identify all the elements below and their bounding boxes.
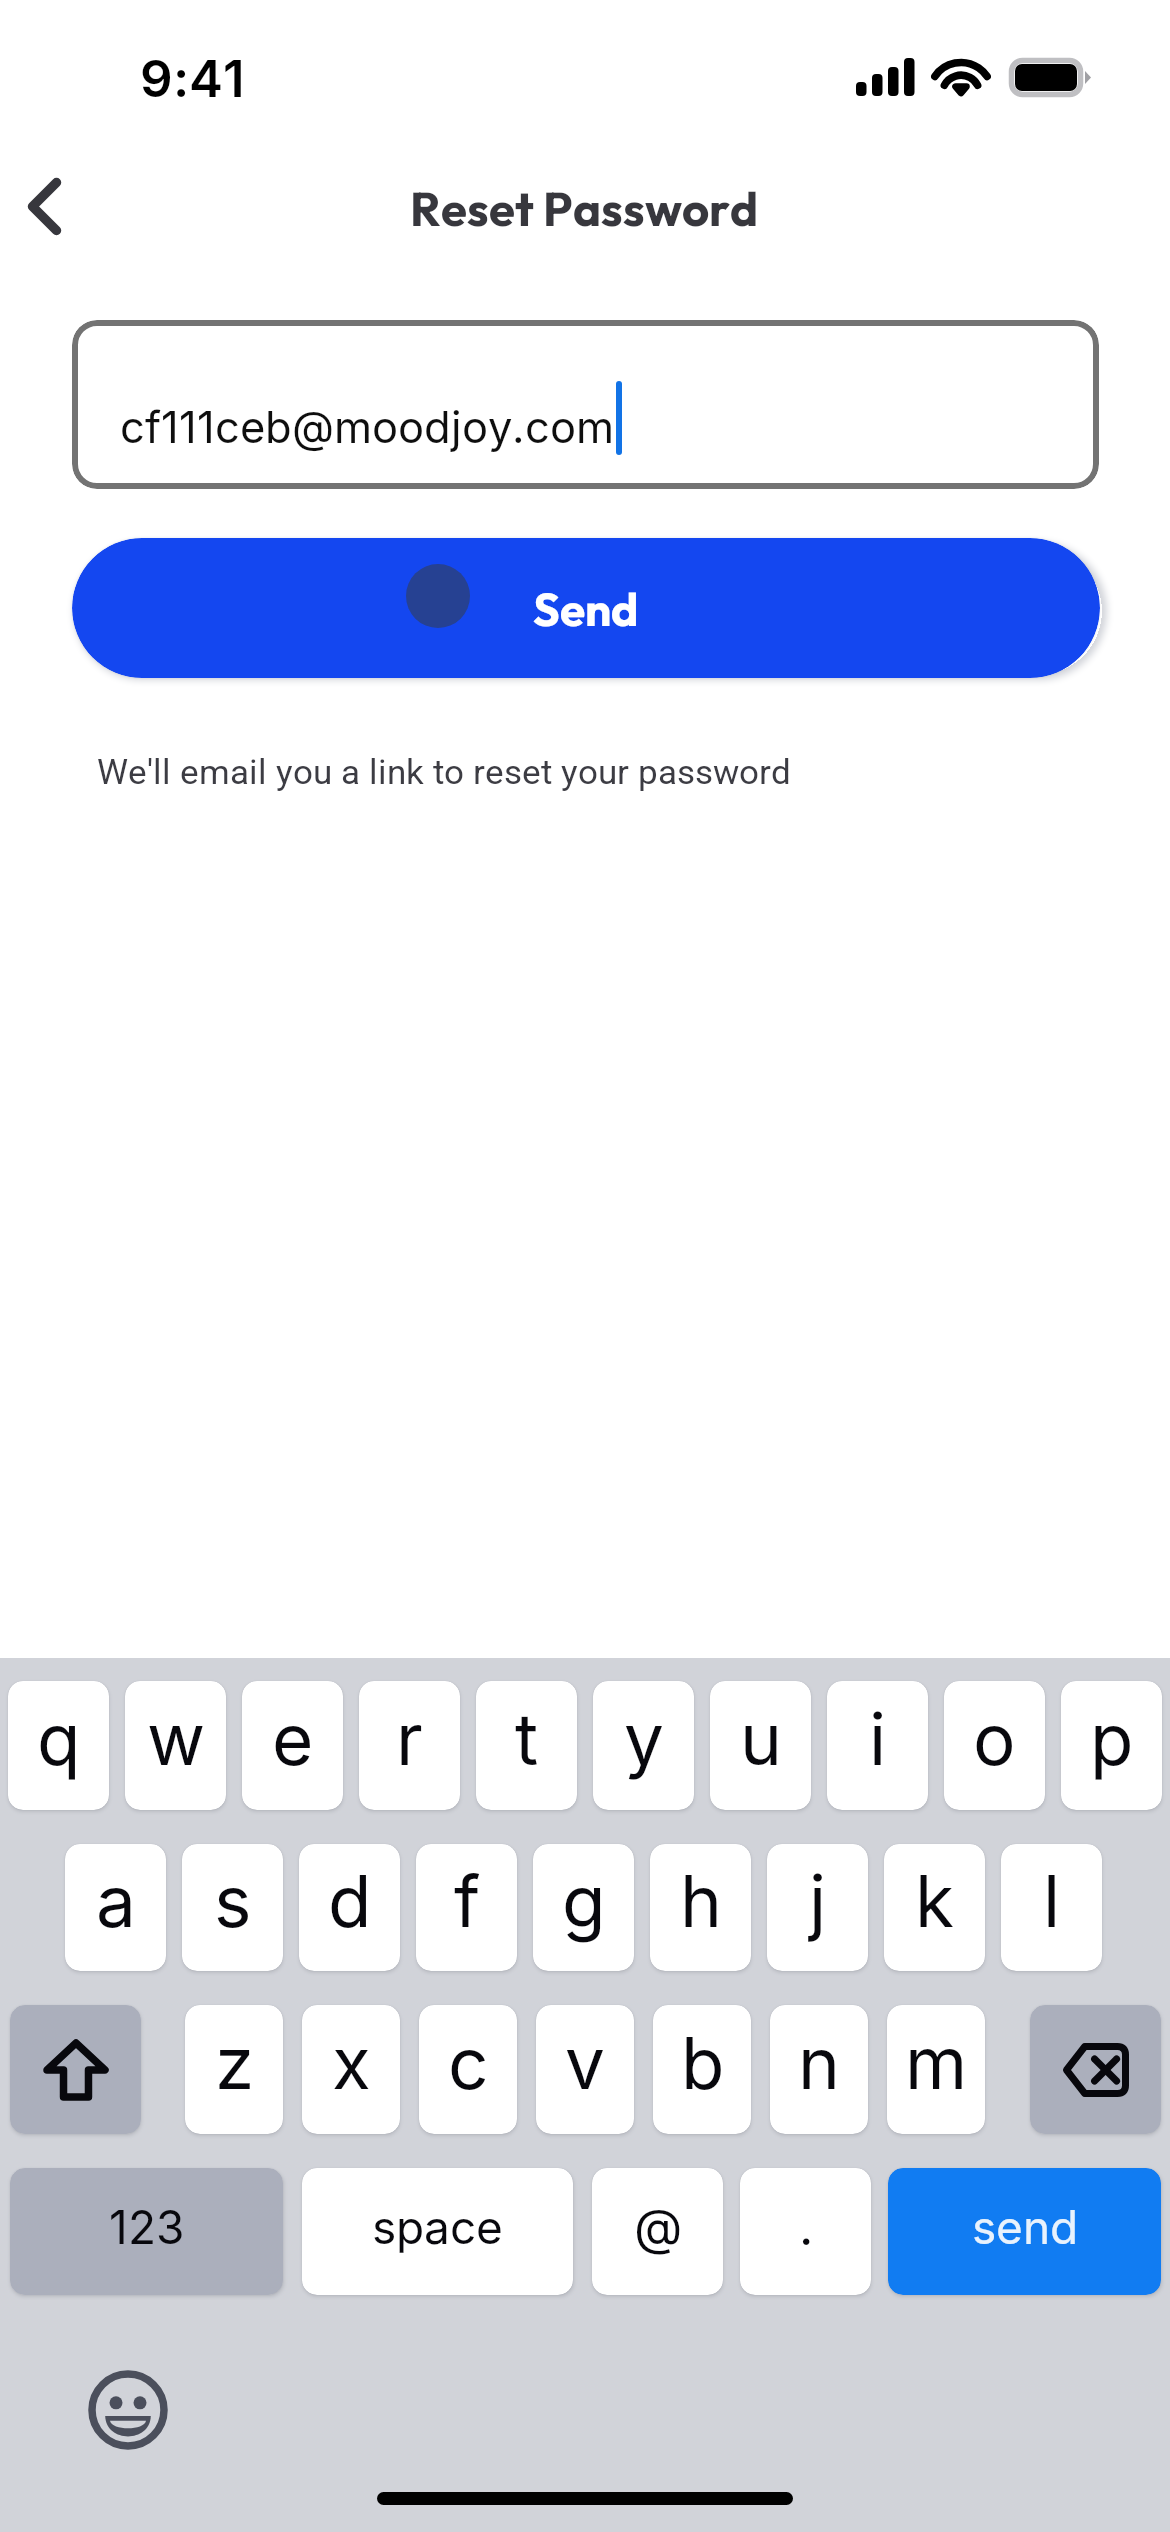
button[interactable] bbox=[767, 1844, 868, 1971]
button[interactable] bbox=[65, 1844, 166, 1971]
button[interactable] bbox=[72, 538, 1100, 678]
button[interactable] bbox=[1061, 1681, 1162, 1810]
button[interactable] bbox=[650, 1844, 751, 1971]
button[interactable] bbox=[299, 1844, 400, 1971]
button[interactable] bbox=[182, 1844, 283, 1971]
button[interactable]: Backspace bbox=[1030, 2005, 1161, 2134]
button[interactable] bbox=[884, 1844, 985, 1971]
button[interactable]: Shift bbox=[10, 2005, 141, 2134]
button[interactable] bbox=[740, 2168, 871, 2295]
button[interactable] bbox=[8, 1681, 109, 1810]
button[interactable] bbox=[185, 2005, 283, 2134]
button[interactable] bbox=[888, 2168, 1161, 2295]
button[interactable] bbox=[476, 1681, 577, 1810]
button[interactable]: Back bbox=[4, 155, 108, 255]
button[interactable] bbox=[944, 1681, 1045, 1810]
button[interactable] bbox=[1001, 1844, 1102, 1971]
button[interactable] bbox=[593, 1681, 694, 1810]
button[interactable] bbox=[827, 1681, 928, 1810]
button[interactable] bbox=[533, 1844, 634, 1971]
button[interactable] bbox=[536, 2005, 634, 2134]
button[interactable] bbox=[416, 1844, 517, 1971]
button[interactable] bbox=[302, 2005, 400, 2134]
button[interactable] bbox=[242, 1681, 343, 1810]
button[interactable] bbox=[359, 1681, 460, 1810]
button[interactable] bbox=[10, 2168, 283, 2295]
button[interactable]: Emoji keyboard bbox=[88, 2370, 168, 2450]
button[interactable] bbox=[125, 1681, 226, 1810]
button[interactable] bbox=[770, 2005, 868, 2134]
button[interactable] bbox=[302, 2168, 573, 2295]
button[interactable] bbox=[710, 1681, 811, 1810]
button[interactable] bbox=[419, 2005, 517, 2134]
button[interactable] bbox=[887, 2005, 985, 2134]
button[interactable] bbox=[72, 320, 1099, 489]
button[interactable] bbox=[653, 2005, 751, 2134]
button[interactable] bbox=[592, 2168, 723, 2295]
